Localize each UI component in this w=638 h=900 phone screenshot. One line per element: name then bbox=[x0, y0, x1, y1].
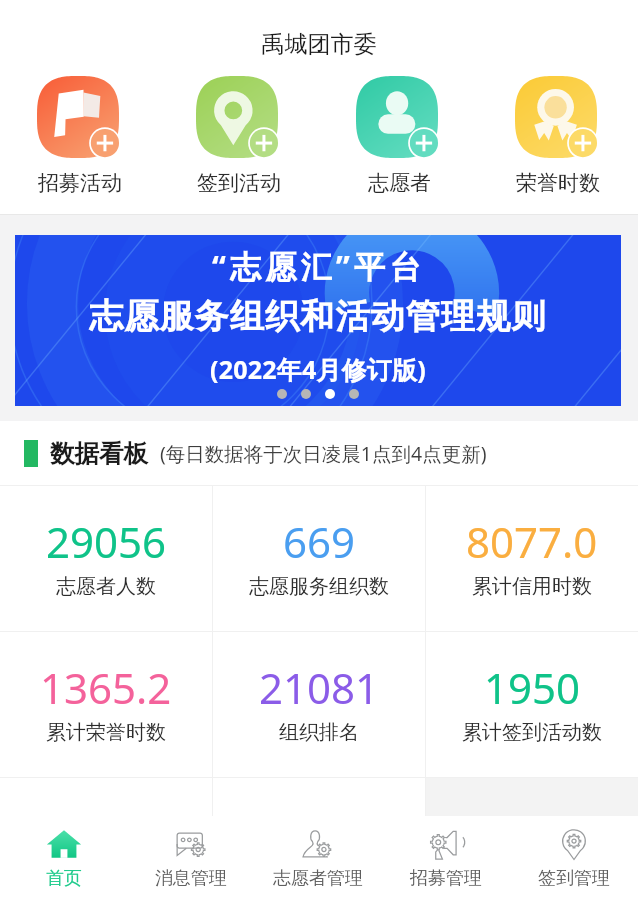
button[interactable]: 签到管理 bbox=[510, 816, 638, 900]
staticText: 志愿者 bbox=[368, 170, 431, 196]
button[interactable]: 签到活动 bbox=[175, 76, 303, 196]
staticText: 签到管理 bbox=[538, 867, 610, 890]
staticText: 21081 bbox=[259, 659, 380, 716]
button[interactable]: 1950 bbox=[426, 632, 638, 777]
staticText: 志愿者人数 bbox=[56, 574, 156, 599]
button[interactable]: 669 bbox=[213, 486, 425, 631]
button[interactable]: 消息管理 bbox=[127, 816, 254, 900]
staticText: (每日数据将于次日凌晨1点到4点更新) bbox=[160, 440, 487, 467]
button[interactable]: 招募活动 bbox=[16, 76, 144, 196]
button[interactable]: 志愿者 bbox=[335, 76, 463, 196]
staticText: 累计信用时数 bbox=[472, 574, 592, 599]
staticText: (2022年4月修订版) bbox=[210, 352, 426, 386]
staticText: 累计荣誉时数 bbox=[46, 720, 166, 745]
button[interactable]: 21081 bbox=[213, 632, 425, 777]
staticText: 签到活动 bbox=[197, 170, 281, 196]
staticText: 669 bbox=[283, 513, 356, 570]
staticText: 8077.0 bbox=[466, 513, 598, 570]
button[interactable]: 荣誉时数 bbox=[494, 76, 622, 196]
button[interactable]: 招募管理 bbox=[382, 816, 510, 900]
staticText: 消息管理 bbox=[155, 867, 227, 890]
button[interactable]: 29056 bbox=[0, 486, 212, 631]
staticText: 招募活动 bbox=[38, 170, 122, 196]
staticText: 招募管理 bbox=[410, 867, 482, 890]
button[interactable]: 1365.2 bbox=[0, 632, 212, 777]
staticText: 数据看板 bbox=[50, 438, 148, 469]
staticText: 禹城团市委 bbox=[0, 30, 638, 59]
staticText: 29056 bbox=[46, 513, 167, 570]
staticText: 1365.2 bbox=[40, 659, 172, 716]
button[interactable]: 志愿者管理 bbox=[254, 816, 382, 900]
staticText: 志愿者管理 bbox=[273, 867, 363, 890]
button[interactable]: 首页 bbox=[0, 816, 127, 900]
staticText: 1950 bbox=[484, 659, 581, 716]
staticText: 荣誉时数 bbox=[516, 170, 600, 196]
staticText: 志愿服务组织数 bbox=[249, 574, 389, 599]
staticText: 首页 bbox=[46, 867, 82, 890]
staticText: 累计签到活动数 bbox=[462, 720, 602, 745]
staticText: 志愿服务组织和活动管理规则 bbox=[89, 295, 547, 338]
button[interactable]: 8077.0 bbox=[426, 486, 638, 631]
staticText: 组织排名 bbox=[279, 720, 359, 745]
staticText: “志愿汇”平台 bbox=[212, 245, 425, 287]
